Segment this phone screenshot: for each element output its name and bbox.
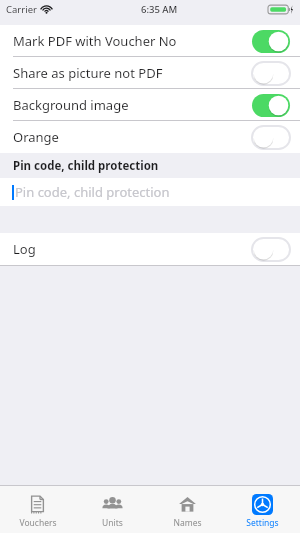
- button[interactable]: Pin code, child protection: [0, 178, 300, 206]
- button[interactable]: Settings: [225, 486, 300, 533]
- button[interactable]: Background image: [0, 89, 300, 121]
- button[interactable]: Mark PDF with Voucher No: [0, 25, 300, 57]
- staticText: 6:35 AM: [141, 3, 178, 16]
- staticText: Vouchers: [19, 517, 57, 529]
- staticText: Log: [13, 240, 36, 258]
- button[interactable]: Share as picture not PDF: [0, 57, 300, 89]
- button[interactable]: Orange: [0, 121, 300, 153]
- staticText: Background image: [13, 96, 129, 114]
- button[interactable]: Vouchers: [0, 486, 75, 533]
- staticText: Pin code, child protection: [13, 158, 159, 174]
- staticText: Orange: [13, 128, 59, 146]
- staticText: Mark PDF with Voucher No: [13, 32, 177, 50]
- button[interactable]: Names: [150, 486, 225, 533]
- staticText: Share as picture not PDF: [13, 64, 163, 82]
- staticText: Settings: [246, 517, 279, 529]
- staticText: Units: [102, 517, 123, 529]
- button[interactable]: Units: [75, 486, 150, 533]
- button[interactable]: Log: [0, 233, 300, 265]
- staticText: Pin code, child protection: [15, 183, 170, 201]
- staticText: Names: [173, 517, 202, 529]
- staticText: Carrier: [6, 3, 37, 16]
